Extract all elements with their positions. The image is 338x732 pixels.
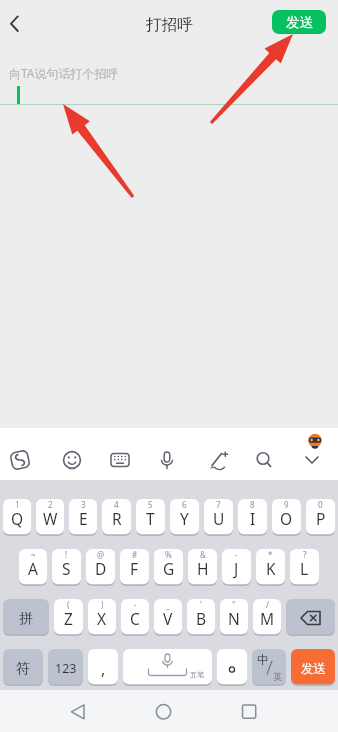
staticText: 发送	[301, 661, 326, 677]
staticText: 9	[284, 499, 289, 510]
staticText: 向TA说句话打个招呼	[9, 65, 119, 81]
staticText: 7	[216, 499, 221, 510]
staticText: #	[132, 549, 138, 560]
staticText: O	[280, 508, 293, 529]
staticText: M	[260, 608, 275, 629]
staticText: 1	[15, 499, 20, 510]
staticText: '	[200, 599, 202, 610]
staticText: E	[79, 508, 88, 529]
staticText: G	[163, 558, 175, 579]
staticText: I	[250, 508, 256, 529]
staticText: S	[62, 558, 71, 579]
staticText: 123	[55, 660, 77, 677]
staticText: Z	[64, 608, 73, 629]
staticText: H	[197, 558, 209, 579]
staticText: ~	[31, 549, 36, 560]
staticText: )	[101, 599, 104, 610]
staticText: ,	[101, 658, 106, 680]
staticText: -	[134, 599, 137, 610]
staticText: "	[232, 599, 236, 610]
staticText: Q	[11, 508, 24, 529]
staticText: 3	[81, 499, 86, 510]
staticText: W	[43, 508, 58, 529]
staticText: 中	[257, 652, 269, 667]
staticText: -	[235, 549, 238, 560]
staticText: 6	[182, 499, 187, 510]
staticText: N	[228, 608, 240, 629]
staticText: !	[65, 549, 68, 560]
staticText: 拼	[19, 610, 33, 628]
staticText: A	[28, 558, 38, 579]
staticText: D	[95, 558, 107, 579]
staticText: (	[67, 599, 70, 610]
staticText: B	[196, 608, 207, 629]
staticText: P	[316, 508, 326, 529]
staticText: &	[200, 549, 206, 560]
staticText: 英	[273, 671, 282, 682]
staticText: F	[130, 558, 139, 579]
staticText: 打招呼	[146, 15, 193, 35]
staticText: T	[146, 508, 155, 529]
staticText: 8	[250, 499, 255, 510]
staticText: 符	[16, 660, 30, 678]
staticText: 5	[148, 499, 153, 510]
staticText: Y	[180, 508, 189, 529]
staticText: X	[97, 608, 107, 629]
staticText: %	[165, 549, 172, 560]
staticText: K	[266, 558, 276, 579]
staticText: V	[163, 608, 173, 629]
staticText: 0	[318, 499, 323, 510]
staticText: @	[97, 549, 105, 560]
staticText: 2	[48, 499, 53, 510]
staticText: 发送	[286, 14, 313, 31]
staticText: /	[266, 599, 269, 610]
staticText: C	[130, 608, 140, 629]
staticText: ?	[303, 549, 307, 560]
staticText: *	[268, 549, 273, 560]
staticText: U	[213, 508, 225, 529]
staticText: _	[166, 599, 170, 610]
staticText: J	[234, 558, 239, 579]
staticText: L	[300, 558, 309, 579]
staticText: 4	[114, 499, 119, 510]
staticText: 五笔	[190, 670, 204, 679]
staticText: R	[112, 508, 122, 529]
